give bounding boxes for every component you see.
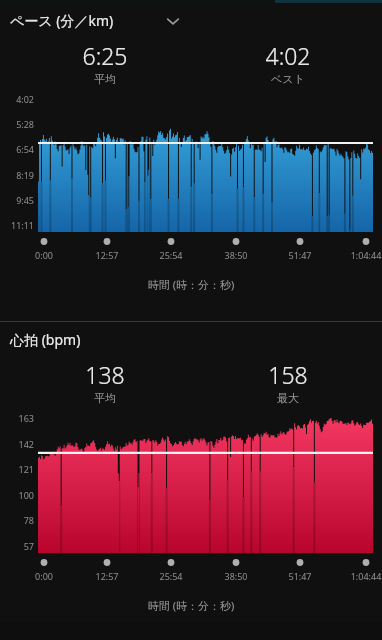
staticText: 38:50 — [206, 249, 266, 261]
staticText: 平均 — [94, 72, 116, 86]
button[interactable]: ペース (分／km) — [0, 3, 382, 321]
staticText: 12:57 — [77, 570, 137, 582]
staticText: 121 — [0, 463, 34, 475]
staticText: 平均 — [94, 391, 116, 405]
staticText: 38:50 — [206, 570, 266, 582]
staticText: 4:02 — [265, 40, 311, 71]
staticText: 11:11 — [0, 219, 34, 231]
staticText: 100 — [0, 489, 34, 501]
staticText: 0:00 — [14, 249, 74, 261]
staticText: 78 — [0, 514, 34, 526]
staticText: 12:57 — [77, 249, 137, 261]
staticText: 4:02 — [0, 93, 34, 105]
staticText: 1:04:44 — [336, 249, 382, 261]
staticText: 0:00 — [14, 570, 74, 582]
staticText: 57 — [0, 540, 34, 552]
staticText: 25:54 — [141, 570, 201, 582]
staticText: ペース (分／km) — [10, 11, 114, 30]
button[interactable]: 4:02 — [228, 40, 348, 86]
button[interactable]: Change metric — [158, 10, 188, 32]
staticText: 6:54 — [0, 143, 34, 155]
staticText: 9:45 — [0, 194, 34, 206]
staticText: 最大 — [277, 391, 299, 405]
staticText: 51:47 — [270, 249, 330, 261]
staticText: 5:28 — [0, 118, 34, 130]
button[interactable]: 158 — [228, 359, 348, 405]
staticText: 時間 (時：分：秒) — [0, 598, 382, 613]
staticText: 138 — [85, 359, 125, 390]
staticText: 心拍 (bpm) — [10, 330, 81, 349]
staticText: 8:19 — [0, 169, 34, 181]
staticText: ベスト — [271, 72, 305, 86]
staticText: 25:54 — [141, 249, 201, 261]
button[interactable]: 心拍 (bpm) — [0, 322, 382, 622]
staticText: 時間 (時：分：秒) — [0, 277, 382, 292]
staticText: 51:47 — [270, 570, 330, 582]
staticText: 142 — [0, 438, 34, 450]
staticText: 1:04:44 — [336, 570, 382, 582]
staticText: 6:25 — [82, 40, 128, 71]
staticText: 158 — [268, 359, 308, 390]
staticText: 163 — [0, 412, 34, 424]
button[interactable]: 6:25 — [45, 40, 165, 86]
button[interactable]: 138 — [45, 359, 165, 405]
